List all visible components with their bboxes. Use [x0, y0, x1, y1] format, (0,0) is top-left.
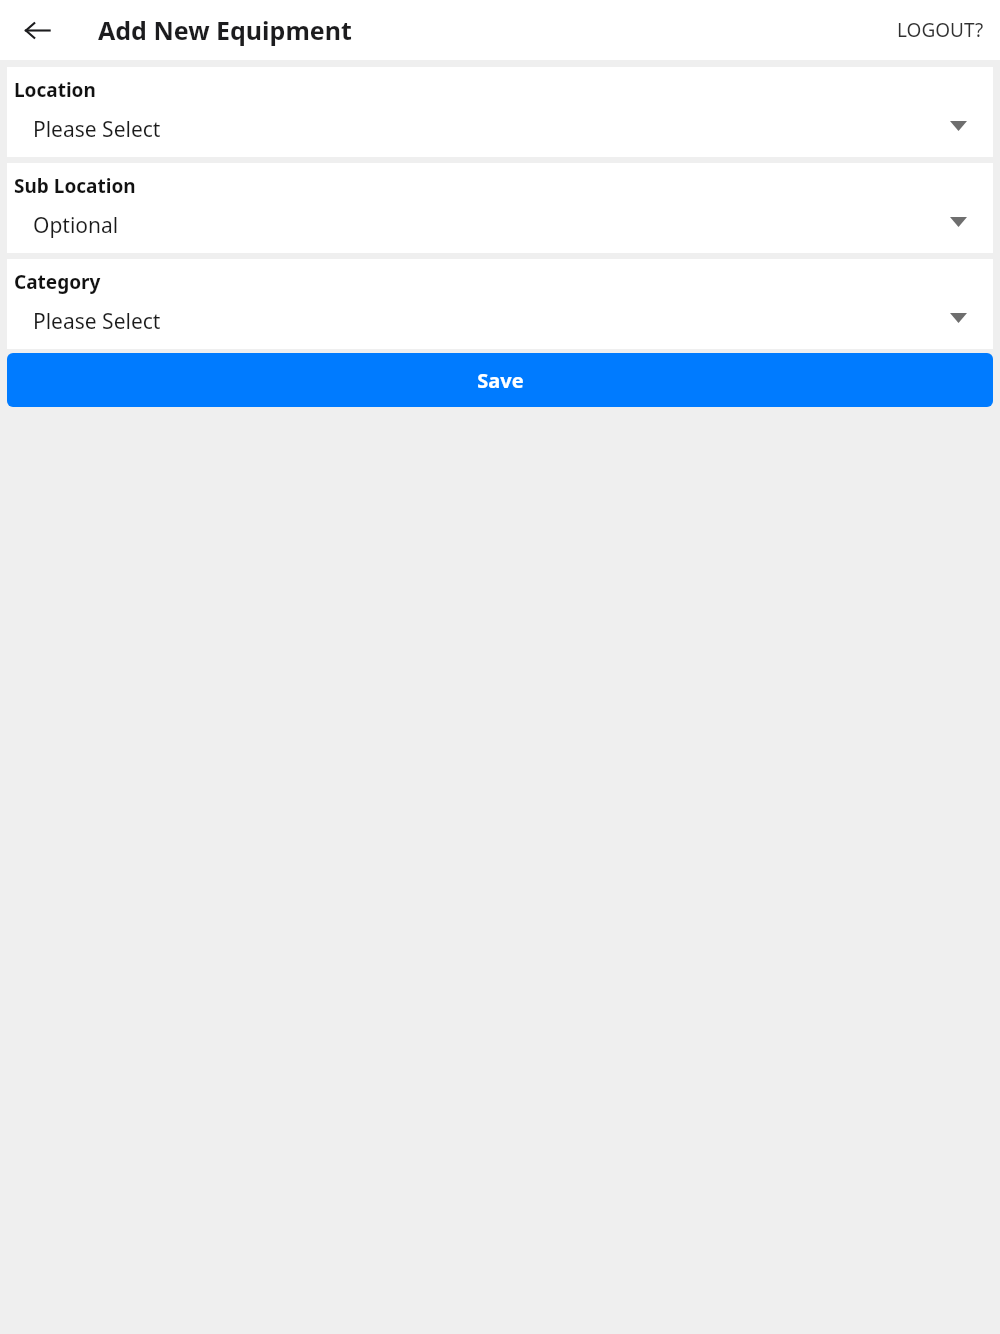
- button[interactable]: Save: [7, 353, 993, 407]
- button[interactable]: Location: [7, 67, 993, 157]
- staticText: Save: [477, 367, 524, 394]
- staticText: LOGOUT?: [897, 17, 984, 43]
- staticText: Optional: [33, 211, 119, 240]
- button[interactable]: Sub Location: [7, 163, 993, 253]
- button[interactable]: LOGOUT?: [881, 5, 1000, 55]
- staticText: Sub Location: [14, 173, 136, 199]
- staticText: Please Select: [33, 307, 161, 336]
- staticText: Category: [14, 269, 101, 295]
- staticText: Location: [14, 77, 96, 103]
- staticText: Please Select: [33, 115, 161, 144]
- staticText: Add New Equipment: [98, 13, 352, 47]
- button[interactable]: Back: [10, 3, 64, 57]
- button[interactable]: Category: [7, 259, 993, 349]
